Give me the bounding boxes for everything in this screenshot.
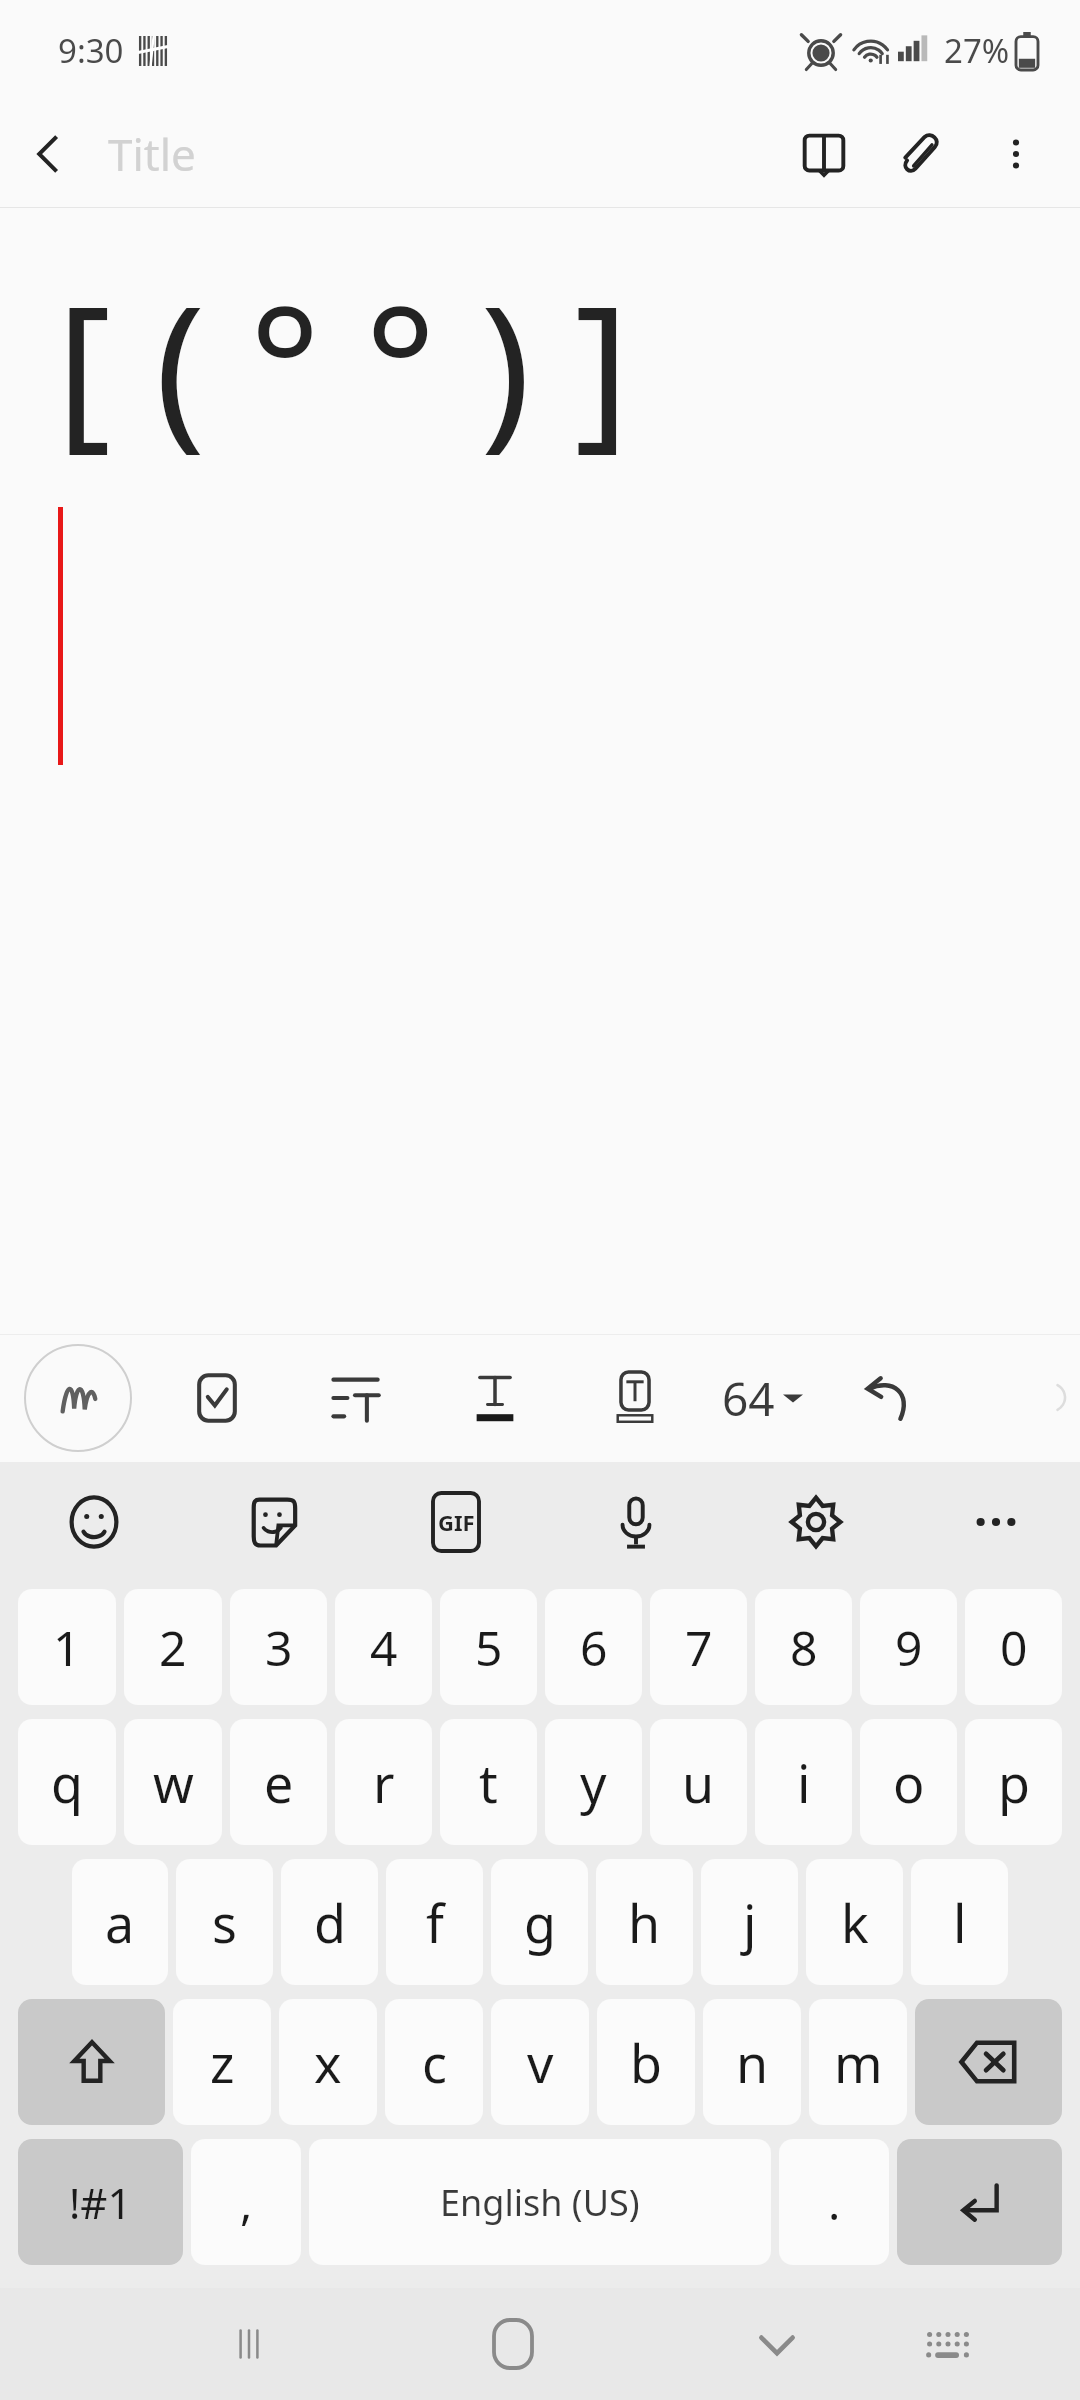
staticText: .	[828, 2171, 841, 2234]
button[interactable]: Redo	[1050, 1344, 1080, 1452]
staticText: z	[210, 2027, 235, 2098]
button[interactable]: w	[124, 1719, 222, 1845]
button[interactable]: 4	[335, 1589, 432, 1705]
staticText: g	[524, 1887, 556, 1958]
staticText: 7	[685, 1615, 713, 1680]
button[interactable]: Recents	[201, 2296, 297, 2392]
staticText: GIF	[438, 1507, 475, 1537]
button[interactable]: 2	[124, 1589, 222, 1705]
staticText: English (US)	[440, 2178, 640, 2227]
button[interactable]: x	[279, 1999, 377, 2125]
button[interactable]: 8	[755, 1589, 852, 1705]
button[interactable]: Emoji	[46, 1474, 142, 1570]
button[interactable]: u	[650, 1719, 747, 1845]
button[interactable]: Shift	[18, 1999, 165, 2125]
button[interactable]: Hide keyboard	[729, 2296, 825, 2392]
button[interactable]: Text color	[452, 1344, 538, 1452]
button[interactable]: j	[701, 1859, 798, 1985]
staticText: x	[314, 2027, 342, 2098]
button[interactable]: Paragraph style	[312, 1344, 398, 1452]
button[interactable]: Home	[465, 2296, 561, 2392]
button[interactable]: a	[72, 1859, 168, 1985]
staticText: b	[630, 2027, 662, 2098]
button[interactable]: 6	[545, 1589, 642, 1705]
button[interactable]: Attach	[872, 106, 968, 202]
button[interactable]: 7	[650, 1589, 747, 1705]
staticText: 6	[580, 1615, 608, 1680]
button[interactable]: Reading view	[776, 106, 872, 202]
staticText: 5	[475, 1615, 503, 1680]
button[interactable]: 64	[722, 1344, 803, 1452]
button[interactable]: k	[806, 1859, 903, 1985]
button[interactable]: 1	[18, 1589, 116, 1705]
button[interactable]: English (US)	[309, 2139, 771, 2265]
button[interactable]: g	[491, 1859, 588, 1985]
button[interactable]: p	[965, 1719, 1062, 1845]
staticText: 2	[159, 1615, 187, 1680]
button[interactable]: q	[18, 1719, 116, 1845]
button[interactable]: ,	[191, 2139, 301, 2265]
staticText: j	[743, 1887, 757, 1958]
button[interactable]: b	[597, 1999, 695, 2125]
staticText: a	[105, 1887, 135, 1958]
button[interactable]: Enter	[897, 2139, 1062, 2265]
staticText: e	[264, 1747, 294, 1818]
staticText: 4	[370, 1615, 398, 1680]
staticText: k	[841, 1887, 869, 1958]
button[interactable]: Undo	[847, 1344, 933, 1452]
staticText: y	[580, 1747, 607, 1818]
button[interactable]: c	[385, 1999, 483, 2125]
staticText: d	[314, 1887, 346, 1958]
button[interactable]: Change keyboard	[900, 2296, 996, 2392]
staticText: n	[736, 2027, 769, 2098]
button[interactable]: f	[386, 1859, 483, 1985]
button[interactable]: More options	[968, 106, 1064, 202]
staticText: !#1	[69, 2174, 132, 2231]
button[interactable]: Handwriting	[24, 1344, 132, 1452]
staticText: c	[422, 2027, 447, 2098]
button[interactable]: Backspace	[915, 1999, 1062, 2125]
staticText: f	[426, 1887, 444, 1958]
staticText: i	[797, 1747, 811, 1818]
button[interactable]: 9	[860, 1589, 957, 1705]
button[interactable]: t	[440, 1719, 537, 1845]
staticText: 3	[265, 1615, 293, 1680]
button[interactable]: Voice input	[588, 1474, 684, 1570]
button[interactable]: More	[948, 1474, 1044, 1570]
staticText: t	[479, 1747, 498, 1818]
staticText: 9:30	[58, 28, 124, 73]
button[interactable]: GIF	[408, 1474, 504, 1570]
button[interactable]: 0	[965, 1589, 1062, 1705]
staticText: 27%	[944, 28, 1010, 73]
staticText: 9	[895, 1615, 923, 1680]
staticText: Title	[108, 124, 196, 184]
staticText: r	[373, 1747, 395, 1818]
button[interactable]: m	[809, 1999, 907, 2125]
button[interactable]: s	[176, 1859, 273, 1985]
button[interactable]: h	[596, 1859, 693, 1985]
staticText: w	[153, 1747, 194, 1818]
button[interactable]: Keyboard settings	[768, 1474, 864, 1570]
button[interactable]: z	[173, 1999, 271, 2125]
staticText: p	[998, 1747, 1030, 1818]
staticText: l	[953, 1887, 967, 1958]
button[interactable]: 3	[230, 1589, 327, 1705]
button[interactable]: n	[703, 1999, 801, 2125]
button[interactable]: Back	[0, 106, 96, 202]
button[interactable]: l	[911, 1859, 1008, 1985]
button[interactable]: o	[860, 1719, 957, 1845]
button[interactable]: 5	[440, 1589, 537, 1705]
button[interactable]: .	[779, 2139, 889, 2265]
button[interactable]: Checklist	[174, 1344, 260, 1452]
button[interactable]: e	[230, 1719, 327, 1845]
button[interactable]: d	[281, 1859, 378, 1985]
button[interactable]: r	[335, 1719, 432, 1845]
staticText: o	[893, 1747, 925, 1818]
button[interactable]: Highlight	[592, 1344, 678, 1452]
button[interactable]: !#1	[18, 2139, 183, 2265]
button[interactable]: y	[545, 1719, 642, 1845]
button[interactable]: v	[491, 1999, 589, 2125]
staticText: s	[212, 1887, 237, 1958]
button[interactable]: i	[755, 1719, 852, 1845]
button[interactable]: Stickers	[227, 1474, 323, 1570]
